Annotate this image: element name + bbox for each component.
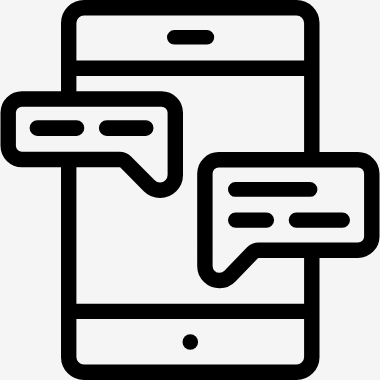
- button[interactable]: Mobile phone chat messages: [0, 0, 380, 380]
